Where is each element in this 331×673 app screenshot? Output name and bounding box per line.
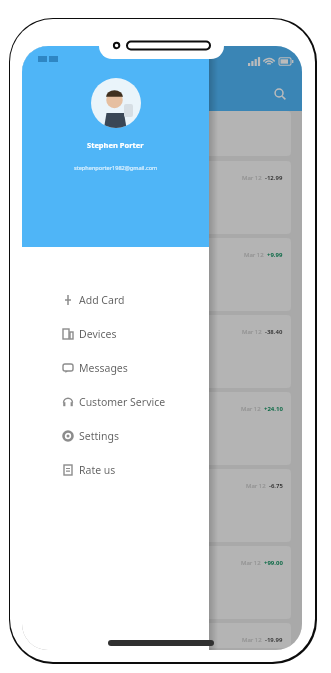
- staticText: -6.75: [269, 482, 283, 490]
- staticText: Uber Eats: [76, 405, 104, 413]
- staticText: Mar 12: [246, 482, 266, 490]
- button[interactable]: Netflix: [33, 161, 291, 234]
- staticText: Rate us: [79, 463, 116, 477]
- staticText: +9.99: [267, 251, 283, 259]
- staticText: +24.10: [264, 405, 283, 413]
- staticText: -12.99: [265, 174, 283, 182]
- staticText: Mar 12: [242, 636, 262, 644]
- staticText: Amazon: [76, 328, 99, 336]
- button[interactable]: Rate us: [22, 453, 209, 487]
- staticText: -19.99: [265, 636, 283, 644]
- button[interactable]: Devices: [22, 317, 209, 351]
- button[interactable]: Amazon: [33, 315, 291, 388]
- staticText: Mar 12: [241, 405, 261, 413]
- button[interactable]: App Store: [33, 546, 291, 619]
- staticText: Devices: [79, 327, 117, 341]
- staticText: Mar 12: [241, 559, 261, 567]
- staticText: Settings: [79, 429, 119, 443]
- button[interactable]: Messages: [22, 351, 209, 385]
- button[interactable]: Starbucks: [33, 469, 291, 542]
- button[interactable]: Steam: [33, 623, 291, 648]
- staticText: Mar 12: [242, 328, 262, 336]
- staticText: Messages: [79, 361, 128, 375]
- staticText: +99.00: [264, 559, 283, 567]
- button[interactable]: [33, 111, 291, 156]
- staticText: Stephen Porter: [87, 140, 144, 150]
- button[interactable]: Spotify: [33, 238, 291, 311]
- staticText: Mar 12: [242, 174, 262, 182]
- button[interactable]: Add Card: [22, 283, 209, 317]
- staticText: stephenporter1982@gmail.com: [74, 164, 158, 172]
- staticText: Add Card: [79, 293, 125, 307]
- button[interactable]: Uber Eats: [33, 392, 291, 465]
- staticText: Customer Service: [79, 395, 166, 409]
- staticText: -38.40: [265, 328, 283, 336]
- button[interactable]: Settings: [22, 419, 209, 453]
- button[interactable]: Search: [268, 82, 292, 106]
- staticText: Mar 12: [244, 251, 264, 259]
- button[interactable]: Customer Service: [22, 385, 209, 419]
